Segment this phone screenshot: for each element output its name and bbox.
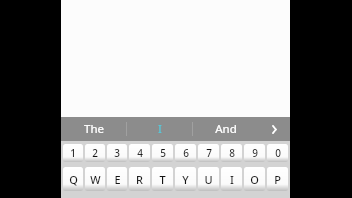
button[interactable]: 3 bbox=[107, 144, 127, 162]
staticText: The bbox=[84, 121, 104, 137]
button[interactable]: T bbox=[152, 167, 173, 191]
button[interactable]: 6 bbox=[175, 144, 196, 162]
staticText: And bbox=[215, 121, 237, 137]
button[interactable]: 0 bbox=[267, 144, 288, 162]
staticText: W bbox=[90, 172, 101, 187]
staticText: O bbox=[250, 172, 259, 187]
button[interactable]: E bbox=[107, 167, 127, 191]
staticText: I bbox=[230, 172, 234, 187]
staticText: E bbox=[114, 172, 121, 187]
staticText: 4 bbox=[137, 146, 143, 160]
staticText: T bbox=[159, 172, 166, 187]
button[interactable]: 1 bbox=[63, 144, 83, 162]
staticText: 1 bbox=[70, 146, 76, 160]
button[interactable]: P bbox=[267, 167, 288, 191]
staticText: 6 bbox=[183, 146, 189, 160]
staticText: I bbox=[158, 121, 162, 137]
staticText: U bbox=[204, 172, 213, 187]
button[interactable]: And bbox=[193, 117, 258, 141]
button[interactable]: 4 bbox=[129, 144, 150, 162]
staticText: 5 bbox=[160, 146, 166, 160]
button[interactable]: O bbox=[244, 167, 265, 191]
button[interactable]: I bbox=[127, 117, 192, 141]
button[interactable]: 9 bbox=[244, 144, 265, 162]
staticText: R bbox=[136, 172, 143, 187]
staticText: 2 bbox=[92, 146, 98, 160]
staticText: P bbox=[274, 172, 281, 187]
button[interactable]: 5 bbox=[152, 144, 173, 162]
button[interactable]: 8 bbox=[221, 144, 242, 162]
button[interactable]: I bbox=[221, 167, 242, 191]
staticText: 9 bbox=[252, 146, 258, 160]
button[interactable]: U bbox=[198, 167, 219, 191]
staticText: 7 bbox=[206, 146, 212, 160]
staticText: 3 bbox=[114, 146, 120, 160]
button[interactable]: R bbox=[129, 167, 150, 191]
staticText: Q bbox=[69, 172, 78, 187]
staticText: 0 bbox=[275, 146, 281, 160]
staticText: Y bbox=[182, 172, 189, 187]
button[interactable]: 2 bbox=[85, 144, 105, 162]
button[interactable]: More suggestions bbox=[258, 117, 290, 141]
button[interactable]: The bbox=[61, 117, 126, 141]
button[interactable]: Y bbox=[175, 167, 196, 191]
button[interactable]: W bbox=[85, 167, 105, 191]
staticText: 8 bbox=[229, 146, 235, 160]
button[interactable]: 7 bbox=[198, 144, 219, 162]
button[interactable]: Q bbox=[63, 167, 83, 191]
